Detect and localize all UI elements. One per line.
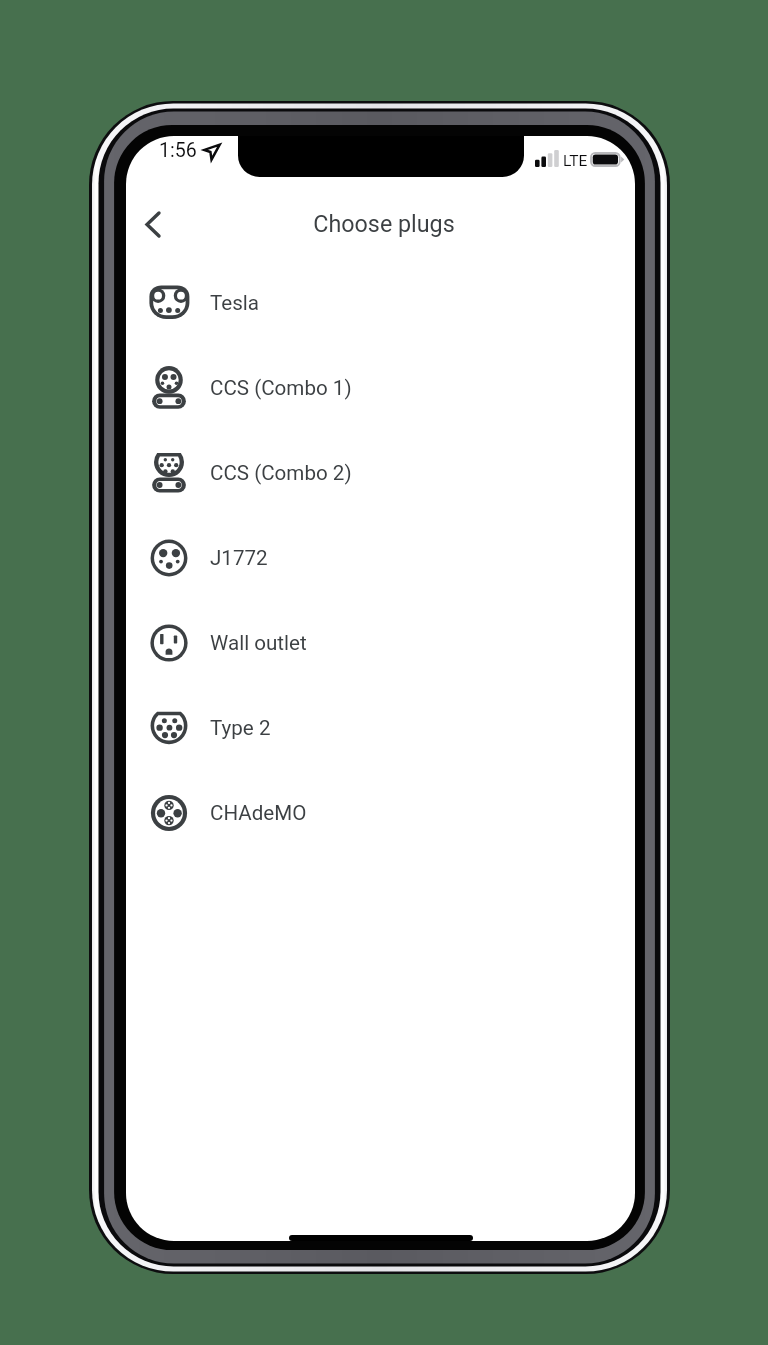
staticText: Tesla	[210, 291, 260, 315]
staticText: Choose plugs	[313, 210, 455, 237]
button[interactable]: CCS (Combo 1)	[126, 345, 635, 430]
staticText: CCS (Combo 2)	[210, 461, 352, 485]
button[interactable]: J1772	[126, 515, 635, 600]
staticText: LTE	[563, 152, 588, 170]
button[interactable]: Back	[129, 200, 177, 248]
button[interactable]: Wall outlet	[126, 600, 635, 685]
staticText: CCS (Combo 1)	[210, 376, 352, 400]
staticText: Type 2	[210, 716, 271, 740]
button[interactable]: Type 2	[126, 685, 635, 770]
staticText: J1772	[210, 546, 268, 570]
staticText: Wall outlet	[210, 631, 307, 655]
staticText: 1:56	[159, 139, 197, 162]
button[interactable]: CCS (Combo 2)	[126, 430, 635, 515]
staticText: CHAdeMO	[210, 801, 307, 825]
button[interactable]: Tesla	[126, 260, 635, 345]
button[interactable]: CHAdeMO	[126, 770, 635, 855]
